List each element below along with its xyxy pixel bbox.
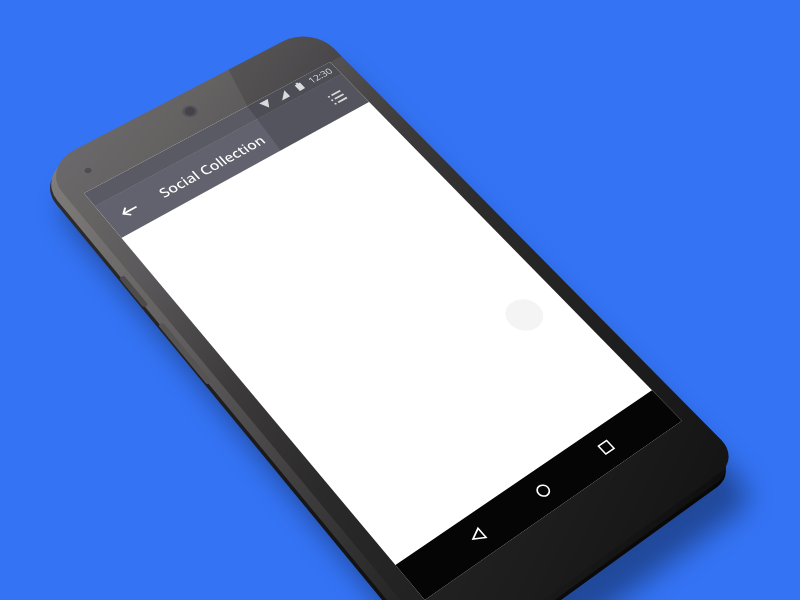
button[interactable]: Social Collection app screen [0, 0, 800, 600]
